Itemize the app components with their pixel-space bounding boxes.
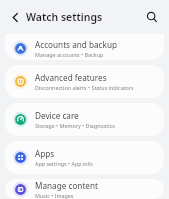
- button[interactable]: Search: [141, 6, 163, 28]
- button[interactable]: Accounts and backup: [5, 34, 164, 60]
- button[interactable]: Device care: [5, 103, 164, 136]
- staticText: Music • Images: [35, 192, 74, 199]
- button[interactable]: Apps: [5, 141, 164, 174]
- staticText: Accounts and backup: [35, 39, 118, 50]
- button[interactable]: Back: [4, 6, 26, 28]
- staticText: Storage • Memory • Diagnostics: [35, 122, 115, 129]
- staticText: Apps: [35, 148, 55, 159]
- staticText: Disconnection alerts • Status indicators: [35, 84, 134, 91]
- staticText: App settings • App info: [35, 160, 93, 167]
- button[interactable]: Manage content: [5, 179, 164, 199]
- staticText: Watch settings: [26, 10, 103, 24]
- staticText: Manage accounts • Backup: [35, 51, 104, 58]
- button[interactable]: Advanced features: [5, 65, 164, 98]
- staticText: Advanced features: [35, 72, 107, 83]
- staticText: Manage content: [35, 180, 98, 191]
- staticText: Device care: [35, 110, 79, 121]
